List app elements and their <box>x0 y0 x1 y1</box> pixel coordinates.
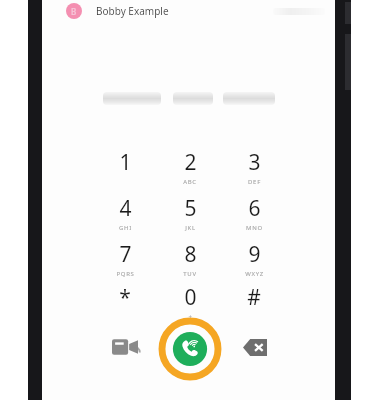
staticText: 5 <box>184 194 197 223</box>
button[interactable]: 7 <box>100 240 150 284</box>
button[interactable]: 6 <box>229 194 279 238</box>
staticText: DEF <box>248 178 261 186</box>
button[interactable]: Video call <box>105 330 145 364</box>
button[interactable]: # <box>229 283 279 327</box>
button[interactable]: 1 <box>100 148 150 192</box>
button[interactable]: 2 <box>165 148 215 192</box>
button[interactable]: B <box>42 0 335 22</box>
staticText: 3 <box>248 148 261 177</box>
staticText: B <box>71 6 77 17</box>
button[interactable]: 3 <box>229 148 279 192</box>
staticText: # <box>247 283 261 312</box>
staticText: JKL <box>185 224 196 232</box>
staticText: 7 <box>119 240 132 269</box>
staticText: TUV <box>183 270 197 278</box>
button[interactable]: Call <box>160 319 220 379</box>
staticText: * <box>119 283 131 312</box>
staticText: 6 <box>248 194 261 223</box>
staticText: GHI <box>119 224 132 232</box>
staticText: Bobby Example <box>96 4 169 18</box>
staticText: 2 <box>184 148 197 177</box>
staticText: 0 <box>184 283 197 312</box>
staticText: 4 <box>119 194 132 223</box>
button[interactable]: 4 <box>100 194 150 238</box>
staticText: WXYZ <box>245 270 264 278</box>
button[interactable]: Backspace <box>236 332 274 362</box>
button[interactable]: * <box>100 283 150 327</box>
staticText: ABC <box>183 178 197 186</box>
staticText: 9 <box>248 240 261 269</box>
staticText: + <box>188 313 193 321</box>
button[interactable]: 9 <box>229 240 279 284</box>
button[interactable]: 8 <box>165 240 215 284</box>
staticText: 8 <box>184 240 197 269</box>
staticText: 1 <box>119 148 132 177</box>
button[interactable]: 0 <box>165 283 215 327</box>
staticText: MNO <box>246 224 263 232</box>
button[interactable]: 5 <box>165 194 215 238</box>
staticText: PQRS <box>116 270 135 278</box>
